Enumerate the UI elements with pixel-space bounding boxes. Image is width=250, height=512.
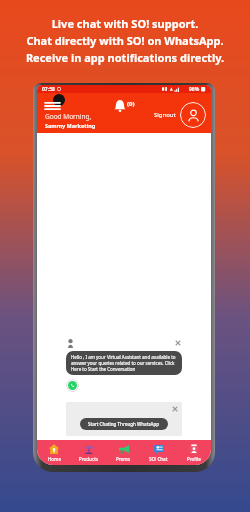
staticText: Products [79, 456, 99, 462]
button[interactable]: Notifications [113, 99, 135, 113]
staticText: Good Morning, [45, 112, 92, 121]
button[interactable]: Start Chating Through WhatsApp [80, 418, 168, 430]
staticText: SO! Chat [149, 456, 168, 462]
staticText: 07:58 [42, 86, 55, 93]
staticText: Chat directly with SO! on WhatsApp. [10, 33, 240, 48]
staticText: Profile [187, 456, 201, 462]
staticText: Hello , I am your Virtual Assistant and … [71, 354, 177, 372]
button[interactable]: SO! Chat [141, 440, 176, 465]
staticText: (0) [127, 100, 135, 108]
button[interactable]: Close [171, 405, 179, 413]
button[interactable]: Profile [180, 102, 206, 128]
button[interactable]: Home [37, 440, 71, 465]
button[interactable]: Promo [106, 440, 141, 465]
staticText: Home [48, 456, 61, 462]
staticText: Live chat with SO! support. [10, 16, 240, 31]
staticText: Sammy Marketing [45, 122, 96, 129]
button[interactable]: Close [174, 339, 182, 347]
staticText: 96% [189, 86, 200, 93]
staticText: Receive in app notifications directly. [10, 50, 240, 65]
button[interactable]: Profile [176, 440, 211, 465]
staticText: Start Chating Through WhatsApp [88, 421, 160, 427]
button[interactable]: Menu [43, 99, 98, 131]
button[interactable]: Products [71, 440, 106, 465]
button[interactable]: Signout [152, 109, 178, 121]
button[interactable]: Hello , I am your Virtual Assistant and … [66, 351, 182, 375]
staticText: Promo [116, 456, 131, 462]
button[interactable]: WhatsApp [66, 379, 79, 392]
